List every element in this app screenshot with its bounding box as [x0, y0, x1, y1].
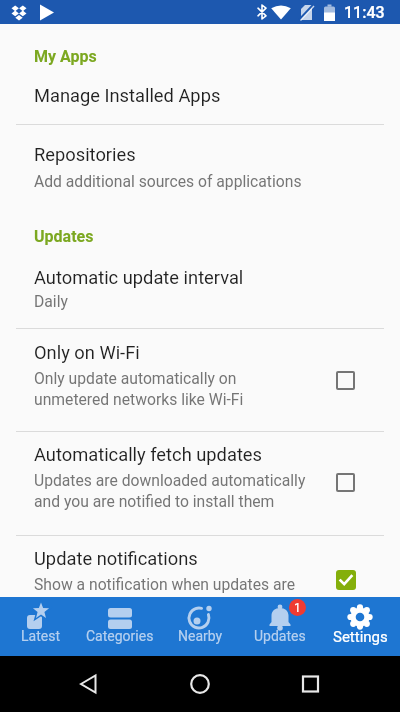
- staticText: Settings: [333, 628, 388, 646]
- staticText: Only update automatically on unmetered n…: [34, 369, 244, 409]
- staticText: Show a notification when updates are: [34, 575, 296, 593]
- button[interactable]: Categories: [80, 597, 160, 656]
- staticText: Nearby: [178, 628, 223, 644]
- button[interactable]: Only on Wi-Fi: [0, 328, 400, 431]
- button[interactable]: Update notifications: [0, 535, 400, 597]
- staticText: Daily: [34, 292, 68, 310]
- staticText: Automatically fetch updates: [34, 444, 263, 465]
- staticText: Update notifications: [34, 548, 198, 569]
- staticText: 11:43: [344, 3, 385, 22]
- staticText: Updates: [254, 628, 306, 644]
- button[interactable]: Automatically fetch updates: [0, 431, 400, 535]
- staticText: 1: [294, 601, 301, 615]
- button[interactable]: Automatic update interval: [0, 250, 400, 328]
- button[interactable]: [282, 656, 338, 712]
- staticText: Add additional sources of applications: [34, 172, 302, 190]
- button[interactable]: Manage Installed Apps: [0, 68, 400, 124]
- button[interactable]: 1: [240, 597, 320, 656]
- staticText: My Apps: [34, 47, 97, 66]
- button[interactable]: Repositories: [0, 124, 400, 214]
- staticText: Manage Installed Apps: [34, 85, 221, 106]
- staticText: Latest: [21, 628, 60, 644]
- button[interactable]: [60, 656, 116, 712]
- staticText: Repositories: [34, 144, 136, 165]
- staticText: Categories: [86, 628, 154, 644]
- button[interactable]: Settings: [320, 597, 400, 656]
- staticText: Only on Wi-Fi: [34, 342, 140, 363]
- button[interactable]: [172, 656, 228, 712]
- staticText: Updates: [34, 227, 94, 246]
- staticText: Updates are downloaded automatically and…: [34, 471, 306, 511]
- button[interactable]: Nearby: [160, 597, 240, 656]
- button[interactable]: Latest: [0, 597, 80, 656]
- staticText: Automatic update interval: [34, 267, 244, 288]
